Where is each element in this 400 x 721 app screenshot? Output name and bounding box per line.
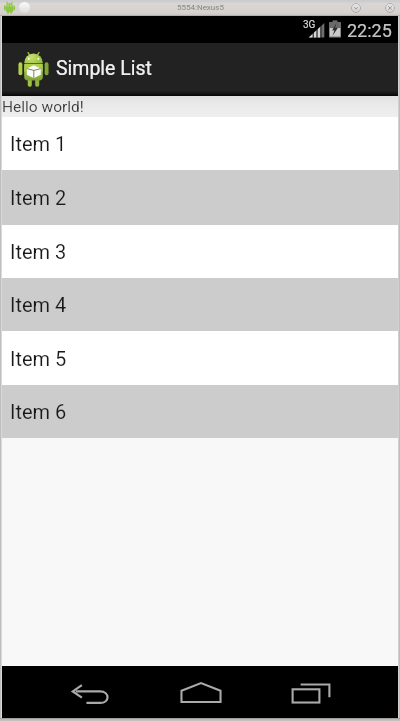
button[interactable]: Recents	[256, 666, 366, 718]
staticText: 3G	[303, 19, 316, 31]
button[interactable]: Item 2	[2, 170, 398, 225]
button[interactable]: Item 4	[2, 278, 398, 331]
button[interactable]: Item 1	[2, 117, 398, 170]
button[interactable]: Item 6	[2, 385, 398, 438]
button[interactable]: Menu	[19, 2, 30, 13]
staticText: Item 2	[10, 186, 67, 209]
button[interactable]: Item 3	[2, 225, 398, 278]
staticText: 5554:Nexus5	[177, 3, 224, 12]
button[interactable]: Emulator menu	[4, 2, 15, 14]
staticText: Item 6	[10, 400, 67, 423]
staticText: Item 1	[10, 132, 67, 155]
button[interactable]: Back	[36, 666, 146, 718]
staticText: Item 3	[10, 240, 67, 263]
button[interactable]: Minimize	[351, 3, 361, 13]
staticText: 22:25	[347, 20, 392, 41]
staticText: Simple List	[56, 57, 152, 80]
staticText: Item 5	[10, 347, 67, 370]
button[interactable]: Home	[146, 666, 256, 718]
button[interactable]: Item 5	[2, 331, 398, 385]
staticText: Item 4	[10, 293, 67, 316]
staticText: Hello world!	[2, 98, 84, 116]
button[interactable]: Close	[385, 3, 395, 13]
